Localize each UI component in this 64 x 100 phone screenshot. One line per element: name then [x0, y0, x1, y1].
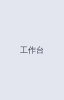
- staticText: 工作台: [20, 45, 44, 55]
